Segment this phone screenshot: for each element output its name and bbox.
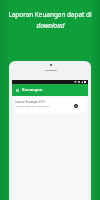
button[interactable]: Menu [15, 88, 20, 93]
staticText: download [36, 21, 65, 30]
button[interactable]: Download [74, 104, 78, 108]
button[interactable]: Laporan Keuangan 2019 [14, 98, 86, 113]
staticText: Laporan Keuangan 2019 [15, 100, 45, 104]
staticText: Laporan Keuangan dapat di [8, 10, 92, 19]
staticText: Laporan keuangan tahun 2019 [15, 104, 50, 107]
staticText: Keuangan [22, 87, 43, 93]
